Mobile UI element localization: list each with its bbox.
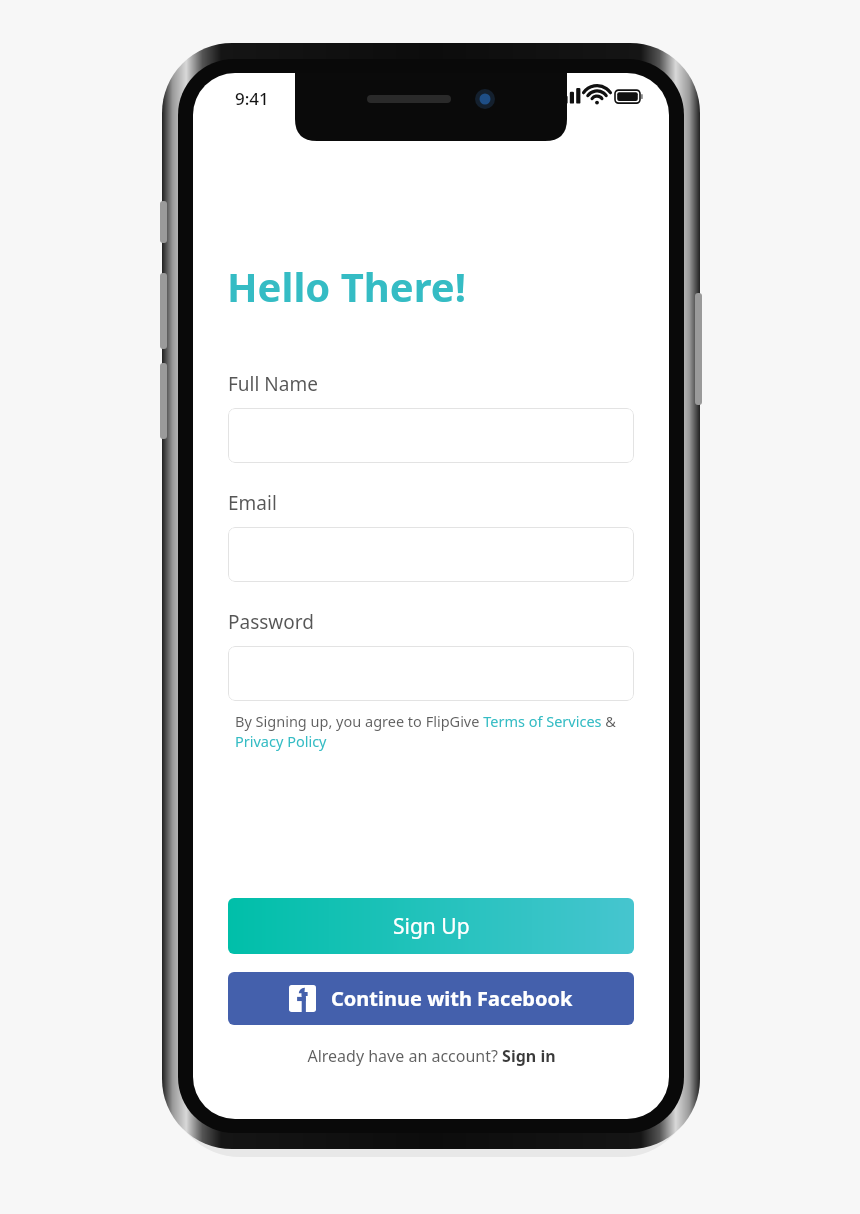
staticText: Hello There! (227, 259, 466, 313)
staticText: 9:41 (235, 87, 269, 110)
button[interactable] (228, 527, 634, 582)
staticText: Full Name (228, 371, 318, 397)
staticText: Sign Up (393, 912, 470, 941)
other: Facebook (289, 985, 316, 1012)
staticText: Password (228, 609, 314, 635)
staticText: Continue with Facebook (331, 985, 573, 1012)
button[interactable] (228, 646, 634, 701)
button[interactable]: Sign Up (228, 898, 634, 954)
button[interactable] (228, 408, 634, 463)
button[interactable]: Already have an account? Sign in (307, 1045, 556, 1067)
staticText: Email (228, 490, 277, 516)
button[interactable]: Facebook (228, 972, 634, 1025)
button[interactable]: By Signing up, you agree to FlipGive Ter… (235, 711, 627, 751)
